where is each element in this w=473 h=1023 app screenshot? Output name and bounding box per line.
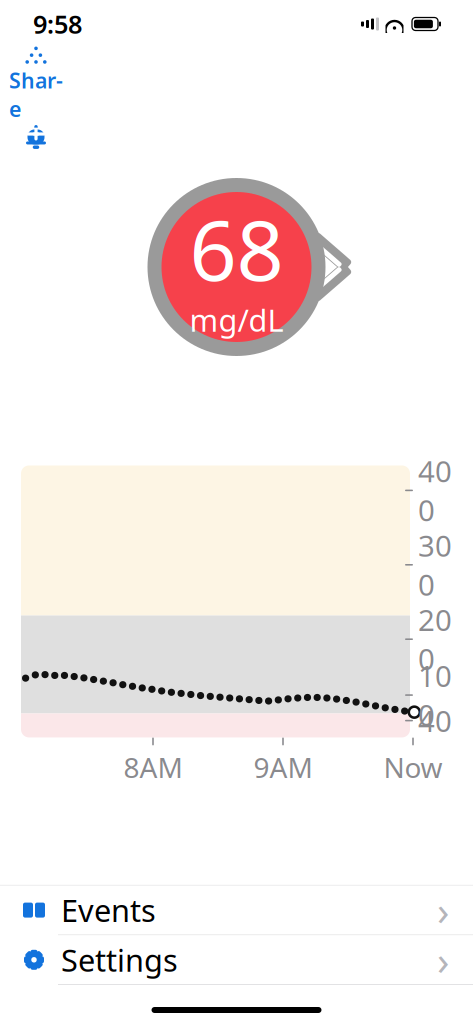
- staticText: Now: [383, 748, 442, 786]
- staticText: 100: [418, 656, 452, 734]
- staticText: 9AM: [253, 748, 312, 786]
- staticText: Share: [9, 66, 63, 123]
- button[interactable]: Settings: [0, 935, 473, 984]
- staticText: 200: [418, 600, 452, 678]
- staticText: Settings: [61, 939, 178, 980]
- staticText: ›: [437, 933, 449, 986]
- staticText: 9:58: [33, 7, 82, 41]
- staticText: 8AM: [123, 748, 182, 786]
- staticText: Events: [61, 890, 156, 930]
- staticText: mg/dL: [189, 299, 283, 340]
- staticText: 300: [418, 526, 452, 604]
- button[interactable]: Share: [8, 62, 64, 106]
- staticText: ›: [437, 883, 449, 937]
- staticText: 40: [418, 701, 452, 740]
- staticText: 400: [418, 451, 452, 529]
- staticText: 68: [189, 194, 283, 303]
- button[interactable]: Events: [0, 886, 473, 935]
- button[interactable]: Alerts muted: [8, 118, 64, 156]
